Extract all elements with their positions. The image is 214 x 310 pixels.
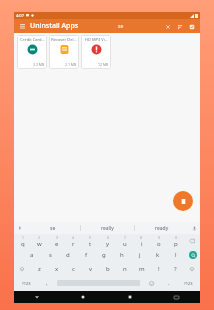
button[interactable]: b [99,262,116,276]
button[interactable]: Shift [14,262,30,276]
button[interactable]: 9 [150,234,167,248]
staticText: Credit Card... [20,37,45,42]
staticText: ?123 [184,281,193,286]
staticText: s [49,251,52,259]
staticText: 2 [38,235,41,240]
button[interactable]: 7 [116,234,133,248]
staticText: m [139,265,145,273]
staticText: p [174,240,178,248]
staticText: q [21,240,25,248]
staticText: HD MP3 Vi... [85,37,108,42]
button[interactable]: Search [185,248,200,262]
button[interactable]: ?123 [14,276,38,290]
staticText: i [141,240,143,248]
button[interactable]: Backspace [184,234,200,248]
button[interactable]: Credit Card... [17,35,47,69]
staticText: v [89,265,93,273]
button[interactable]: really [81,222,134,234]
staticText: 3.3 MB [33,62,45,67]
staticText: 2.1 MB [65,62,77,67]
staticText: e [55,240,59,248]
staticText: y [106,240,110,248]
button[interactable]: m [133,262,150,276]
button[interactable]: Clear search [163,22,172,31]
staticText: h [120,251,124,259]
staticText: 9 [158,235,161,240]
staticText: se [118,23,124,30]
staticText: 4:07 [16,13,24,18]
staticText: g [102,251,106,259]
button[interactable]: x [48,262,65,276]
staticText: r [72,240,75,248]
staticText: se [50,225,56,232]
button[interactable]: Emoji [142,276,160,290]
button[interactable]: g [95,248,113,262]
button[interactable]: l [167,248,185,262]
staticText: Uninstall Apps [30,21,79,31]
button[interactable]: Hide keyboard [14,291,60,303]
button[interactable]: ? [167,262,184,276]
button[interactable]: ?123 [177,276,200,290]
button[interactable]: Switch keyboard [153,291,200,303]
staticText: 6 [107,235,110,240]
button[interactable]: Shift [184,262,200,276]
button[interactable]: 0 [167,234,184,248]
button[interactable]: s [41,248,59,262]
button[interactable]: Navigation menu [18,22,27,31]
button[interactable]: 1 [14,234,31,248]
button[interactable]: , [38,276,55,290]
staticText: f [85,251,88,259]
button[interactable]: Uninstall selected [173,191,193,211]
button[interactable]: 2 [31,234,48,248]
button[interactable]: d [59,248,77,262]
staticText: ! [158,265,160,273]
staticText: really [101,225,114,232]
staticText: 5 [89,235,92,240]
button[interactable]: Voice input [188,222,200,234]
staticText: t [89,240,92,248]
button[interactable]: j [131,248,149,262]
button[interactable]: 5 [82,234,99,248]
button[interactable]: HD MP3 Vi... [81,35,111,69]
button[interactable]: z [30,262,48,276]
staticText: c [72,265,75,273]
button[interactable]: 3 [48,234,65,248]
button[interactable]: ready [135,222,188,234]
staticText: j [139,251,141,259]
staticText: 8 [140,235,143,240]
button[interactable]: Sort [175,22,184,31]
button[interactable]: 8 [133,234,150,248]
staticText: x [55,265,59,273]
button[interactable]: ! [150,262,167,276]
button[interactable]: . [160,276,177,290]
button[interactable]: n [116,262,133,276]
button[interactable]: f [77,248,95,262]
button[interactable]: se [26,222,80,234]
button[interactable]: 6 [99,234,116,248]
staticText: n [123,265,127,273]
button[interactable]: c [65,262,82,276]
staticText: 3 [56,235,59,240]
button[interactable]: Recent apps [106,291,153,303]
staticText: ?123 [22,281,31,286]
staticText: 12 MB [98,62,109,67]
staticText: b [106,265,110,273]
button[interactable]: More suggestions [14,222,26,234]
button[interactable]: v [82,262,99,276]
staticText: k [156,251,160,259]
staticText: a [30,251,34,259]
staticText: 4 [72,235,75,240]
button[interactable]: Home [60,291,106,303]
staticText: l [175,251,177,259]
button[interactable]: Select all [187,22,196,31]
button[interactable]: Search field [108,22,134,30]
staticText: ? [174,265,177,273]
staticText: d [66,251,70,259]
button[interactable]: 4 [65,234,82,248]
staticText: Recover Del... [51,37,77,42]
button[interactable]: a [22,248,41,262]
button[interactable]: h [113,248,131,262]
button[interactable]: Recover Del... [49,35,79,69]
button[interactable]: k [149,248,167,262]
